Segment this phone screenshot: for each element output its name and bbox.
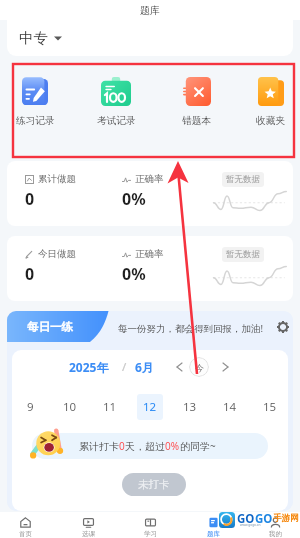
staticText: 10 <box>63 399 77 415</box>
staticText: 2025年 <box>69 359 109 375</box>
button[interactable]: 设置 <box>277 321 289 333</box>
button[interactable]: 我的 <box>250 512 300 538</box>
button[interactable]: 上个月 <box>170 358 188 376</box>
staticText: 0 <box>25 188 35 210</box>
staticText: 今 <box>195 362 204 373</box>
button[interactable]: 13 <box>177 394 203 420</box>
staticText: 6月 <box>135 359 154 375</box>
button[interactable]: 下个月 <box>216 358 234 376</box>
staticText: 超过 <box>145 440 165 453</box>
staticText: 我的 <box>269 530 282 538</box>
staticText: GO <box>237 511 255 527</box>
staticText: 题库 <box>140 4 160 17</box>
staticText: www.gogo.cn <box>240 523 261 527</box>
staticText: / <box>122 359 127 375</box>
staticText: 的同学~ <box>180 439 216 453</box>
button[interactable]: 11 <box>97 394 123 420</box>
staticText: GO <box>255 511 273 527</box>
staticText: 12 <box>143 399 157 415</box>
staticText: 首页 <box>19 530 32 538</box>
staticText: 题库 <box>207 530 220 538</box>
staticText: 0 <box>25 263 35 285</box>
button[interactable]: 选课 <box>63 512 113 538</box>
staticText: 9 <box>27 399 34 415</box>
staticText: 未打卡 <box>138 478 170 491</box>
staticText: 选课 <box>82 530 95 538</box>
staticText: 13 <box>183 399 197 415</box>
button[interactable]: 14 <box>217 394 243 420</box>
staticText: 暂无数据 <box>226 174 260 185</box>
staticText: 正确率 <box>135 248 164 260</box>
button[interactable]: 9 <box>17 394 43 420</box>
staticText: 每一份努力，都会得到回报，加油! <box>118 322 264 335</box>
staticText: 0% <box>122 188 146 210</box>
button[interactable]: 12 <box>137 394 163 420</box>
button[interactable]: 错题本 <box>166 72 228 136</box>
staticText: 0% <box>122 263 146 285</box>
button[interactable]: 学习 <box>125 512 175 538</box>
staticText: 11 <box>103 399 117 415</box>
staticText: 14 <box>223 399 237 415</box>
button[interactable]: 首页 <box>0 512 50 538</box>
staticText: 暂无数据 <box>226 249 260 260</box>
button[interactable]: 未打卡 <box>122 473 186 496</box>
staticText: 考试记录 <box>97 115 136 127</box>
button[interactable]: 练习记录 <box>4 72 66 136</box>
staticText: 0% <box>165 439 180 453</box>
staticText: 学习 <box>144 530 157 538</box>
button[interactable]: 题库 <box>188 512 238 538</box>
button[interactable]: 收藏夹 <box>240 72 300 136</box>
staticText: 15 <box>263 399 277 415</box>
staticText: 0 <box>119 439 125 453</box>
staticText: 今日做题 <box>38 248 76 260</box>
staticText: 错题本 <box>182 115 212 127</box>
button[interactable]: 中专 <box>19 20 293 56</box>
staticText: 每日一练 <box>27 320 73 334</box>
staticText: 累计打卡 <box>79 440 119 453</box>
staticText: 天， <box>125 440 145 453</box>
button[interactable]: 15 <box>257 394 283 420</box>
staticText: 正确率 <box>135 173 164 185</box>
staticText: 练习记录 <box>16 115 55 127</box>
staticText: 收藏夹 <box>256 115 286 127</box>
button[interactable]: 今天 <box>189 357 209 377</box>
button[interactable]: 10 <box>57 394 83 420</box>
staticText: 中专 <box>19 29 48 47</box>
button[interactable]: 考试记录 <box>85 72 147 136</box>
staticText: 累计做题 <box>38 173 76 185</box>
staticText: 手游网 <box>273 513 299 524</box>
